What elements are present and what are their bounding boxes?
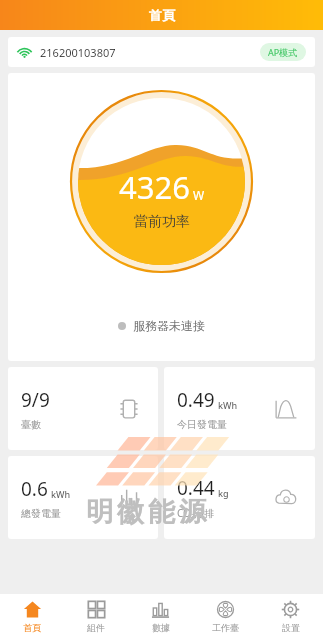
staticText: 首頁 <box>149 7 175 23</box>
button[interactable]: 組件 <box>64 594 128 642</box>
button[interactable] <box>70 90 253 273</box>
staticText: 明徽能源 <box>84 495 208 529</box>
staticText: 0.6 <box>21 476 48 502</box>
staticText: CO₂減排 <box>177 506 215 520</box>
button[interactable]: 數據 <box>128 594 193 642</box>
staticText: AP模式 <box>268 46 298 58</box>
button[interactable]: 0.49 <box>164 367 315 450</box>
staticText: 216200103807 <box>40 45 116 60</box>
button[interactable]: 0.6 <box>8 456 158 539</box>
staticText: 總發電量 <box>21 507 61 520</box>
staticText: 當前功率 <box>134 213 190 231</box>
staticText: 服務器未連接 <box>133 318 205 333</box>
staticText: 組件 <box>87 622 105 633</box>
staticText: 4326 <box>119 166 190 208</box>
staticText: 工作臺 <box>212 622 239 633</box>
staticText: 臺數 <box>21 418 41 431</box>
staticText: 設置 <box>282 622 300 633</box>
button[interactable]: 設置 <box>258 594 323 642</box>
staticText: kg <box>218 487 229 499</box>
staticText: kWh <box>218 399 238 411</box>
staticText: W <box>193 187 205 203</box>
button[interactable]: 工作臺 <box>193 594 258 642</box>
staticText: 數據 <box>152 622 170 633</box>
staticText: 首頁 <box>23 622 41 633</box>
button[interactable]: 216200103807 <box>8 37 315 67</box>
staticText: 今日發電量 <box>177 418 227 431</box>
staticText: 9/9 <box>21 387 50 413</box>
button[interactable]: 9/9 <box>8 367 158 450</box>
staticText: 0.49 <box>177 387 215 413</box>
button[interactable]: 首頁 <box>0 594 64 642</box>
staticText: 0.44 <box>177 475 215 501</box>
button[interactable]: 0.44 <box>164 456 315 539</box>
staticText: kWh <box>51 488 71 500</box>
